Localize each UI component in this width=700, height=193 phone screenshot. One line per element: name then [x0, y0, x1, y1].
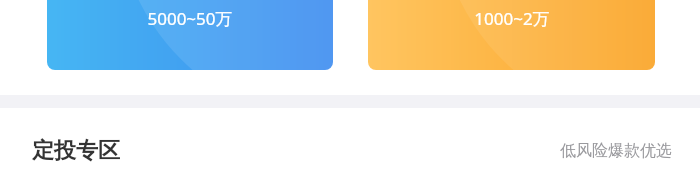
button[interactable]: 1000~2万	[368, 0, 655, 70]
staticText: 低风险爆款优选	[560, 141, 672, 161]
staticText: 定投专区	[32, 137, 120, 165]
button[interactable]: 5000~50万	[47, 0, 333, 70]
staticText: 5000~50万	[147, 7, 233, 30]
staticText: 1000~2万	[474, 7, 550, 30]
button[interactable]: 低风险爆款优选	[560, 141, 672, 161]
